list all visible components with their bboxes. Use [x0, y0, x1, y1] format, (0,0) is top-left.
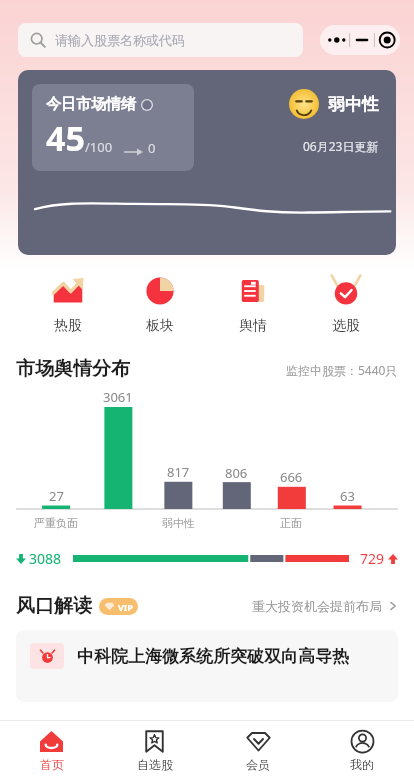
- button[interactable]: 中科院上海微系统所突破双向高导热: [16, 630, 398, 702]
- staticText: 27: [49, 487, 64, 505]
- staticText: 666: [280, 468, 303, 486]
- button[interactable]: 我的: [310, 721, 414, 780]
- staticText: 中科院上海微系统所突破双向高导热: [77, 646, 349, 667]
- staticText: 市场舆情分布: [16, 357, 130, 381]
- button[interactable]: 热股: [22, 272, 114, 337]
- button[interactable]: 风口解读: [16, 594, 398, 618]
- staticText: 45: [46, 115, 85, 161]
- staticText: 风口解读: [16, 594, 92, 618]
- staticText: 06月23日更新: [303, 138, 379, 154]
- staticText: 舆情: [239, 317, 267, 335]
- staticText: 板块: [146, 317, 174, 335]
- button[interactable]: 自选股: [103, 721, 206, 780]
- staticText: 今日市场情绪: [46, 95, 136, 114]
- button[interactable]: 舆情: [206, 272, 299, 337]
- staticText: 63: [340, 487, 355, 505]
- staticText: 请输入股票名称或代码: [55, 32, 185, 48]
- staticText: 首页: [40, 757, 64, 772]
- staticText: 806: [225, 464, 248, 482]
- staticText: /100: [85, 138, 113, 156]
- staticText: 3061: [103, 388, 133, 406]
- button[interactable]: 板块: [114, 272, 206, 337]
- staticText: 监控中股票：5440只: [286, 362, 398, 378]
- staticText: 817: [167, 463, 190, 481]
- button[interactable]: 首页: [0, 721, 103, 780]
- staticText: 729: [360, 549, 385, 568]
- staticText: 3088: [29, 549, 62, 568]
- staticText: 我的: [350, 757, 374, 772]
- button[interactable]: 会员: [206, 721, 310, 780]
- button[interactable]: 今日市场情绪: [18, 70, 396, 255]
- staticText: VIP: [118, 601, 133, 613]
- staticText: 严重负面: [34, 516, 78, 530]
- button[interactable]: More options: [320, 25, 400, 55]
- staticText: 重大投资机会提前布局: [252, 598, 382, 614]
- staticText: 弱中性: [328, 94, 379, 115]
- staticText: 选股: [332, 317, 360, 335]
- button[interactable]: 选股: [299, 272, 392, 337]
- staticText: 0: [148, 139, 156, 157]
- staticText: 会员: [246, 757, 270, 772]
- button[interactable]: 请输入股票名称或代码: [18, 23, 303, 57]
- staticText: 正面: [280, 516, 302, 530]
- staticText: 热股: [54, 317, 82, 335]
- staticText: 自选股: [137, 757, 173, 772]
- staticText: 弱中性: [162, 516, 195, 530]
